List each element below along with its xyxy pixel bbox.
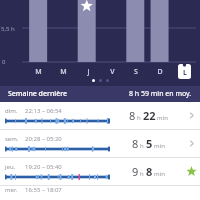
staticText: 19:20 – 05:40 — [25, 163, 62, 171]
button[interactable]: dim. — [0, 102, 200, 129]
staticText: 22:13 – 06:54 — [25, 107, 62, 115]
button[interactable]: mer. — [0, 186, 200, 200]
staticText: min — [157, 114, 168, 122]
staticText: L — [183, 68, 187, 78]
staticText: 8 h 59 min en moy. — [129, 89, 192, 99]
staticText: sem. — [5, 135, 25, 143]
staticText: mer. — [5, 186, 25, 194]
button[interactable]: Aujourd'hui — [178, 64, 191, 79]
staticText: Semaine dernière — [8, 89, 68, 99]
staticText: dim. — [5, 107, 25, 115]
staticText: 8 — [129, 108, 136, 123]
staticText: J — [87, 67, 90, 77]
staticText: V — [110, 67, 115, 77]
staticText: h — [137, 114, 141, 122]
staticText: D — [157, 67, 163, 77]
staticText: 8 — [146, 164, 153, 179]
staticText: M — [60, 67, 67, 77]
staticText: 0 — [2, 58, 6, 66]
staticText: 8 — [132, 136, 139, 151]
staticText: 16:55 – 18:07 — [25, 186, 62, 194]
button[interactable]: Semaine dernière — [0, 86, 200, 102]
button[interactable]: jeu. — [0, 158, 200, 185]
staticText: jeu. — [5, 163, 25, 171]
staticText: 22 — [143, 108, 156, 123]
staticText: min — [154, 142, 165, 150]
staticText: S — [134, 67, 138, 77]
staticText: 20:28 – 05:20 — [25, 135, 62, 143]
staticText: 5 — [146, 136, 153, 151]
staticText: min — [154, 170, 165, 178]
staticText: 5,5 h — [1, 25, 15, 33]
button[interactable]: sem. — [0, 130, 200, 157]
staticText: M — [35, 67, 42, 77]
staticText: 9 — [132, 164, 139, 179]
staticText: h — [140, 170, 144, 178]
staticText: h — [140, 142, 144, 150]
